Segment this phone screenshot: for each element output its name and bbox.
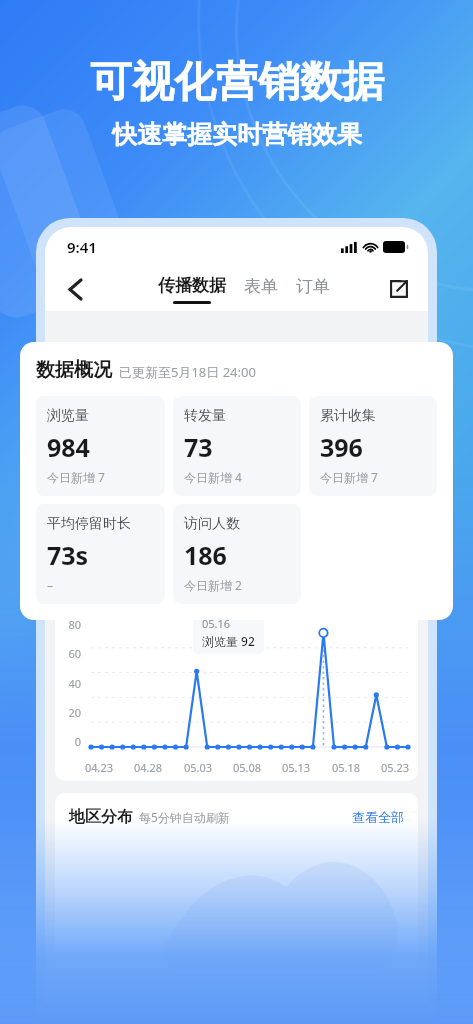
staticText: 转发量 xyxy=(184,407,226,425)
button[interactable]: 表单 xyxy=(244,276,278,304)
button[interactable]: 查看全部 xyxy=(352,809,404,825)
staticText: 地区分布 xyxy=(69,807,133,827)
staticText: 984 xyxy=(47,430,90,464)
staticText: 05.16 xyxy=(202,616,231,631)
staticText: 40 xyxy=(61,676,81,691)
staticText: – xyxy=(47,577,54,593)
button[interactable]: Back xyxy=(57,271,93,307)
staticText: 平均停留时长 xyxy=(47,515,131,533)
staticText: 已更新至5月18日 24:00 xyxy=(119,363,256,381)
staticText: 73s xyxy=(47,538,89,572)
staticText: 浏览量 92 xyxy=(202,633,255,649)
staticText: 73 xyxy=(184,430,213,464)
staticText: 浏览量 xyxy=(47,407,89,425)
staticText: 今日新增 7 xyxy=(320,469,378,485)
staticText: 数据概况 xyxy=(36,358,112,382)
staticText: 396 xyxy=(320,430,363,464)
staticText: 可视化营销数据 xyxy=(90,56,384,109)
staticText: 05.18 xyxy=(332,760,361,775)
staticText: 9:41 xyxy=(67,237,97,257)
staticText: 今日新增 7 xyxy=(47,469,105,485)
staticText: 186 xyxy=(184,538,227,572)
button[interactable]: Share xyxy=(382,272,416,306)
staticText: 0 xyxy=(61,734,81,749)
staticText: 每5分钟自动刷新 xyxy=(139,809,230,825)
staticText: 今日新增 2 xyxy=(184,577,242,593)
button[interactable]: 累计收集 xyxy=(309,396,437,496)
staticText: 快速掌握实时营销效果 xyxy=(112,119,362,150)
staticText: 05.03 xyxy=(184,760,213,775)
button[interactable]: 传播数据 xyxy=(158,275,226,304)
button[interactable]: 浏览量 xyxy=(36,396,165,496)
button[interactable]: 转发量 xyxy=(173,396,301,496)
staticText: 访问人数 xyxy=(184,515,240,533)
staticText: 05.13 xyxy=(282,760,311,775)
button[interactable]: 订单 xyxy=(296,276,330,304)
staticText: 05.08 xyxy=(233,760,262,775)
staticText: 04.28 xyxy=(134,760,163,775)
staticText: 05.23 xyxy=(381,760,410,775)
staticText: 今日新增 4 xyxy=(184,469,242,485)
staticText: 80 xyxy=(61,617,81,632)
staticText: 传播数据 xyxy=(158,275,226,296)
staticText: 累计收集 xyxy=(320,407,376,425)
button[interactable]: 平均停留时长 xyxy=(36,504,165,604)
button[interactable]: 访问人数 xyxy=(173,504,301,604)
staticText: 60 xyxy=(61,646,81,661)
staticText: 04.23 xyxy=(85,760,114,775)
staticText: 20 xyxy=(61,705,81,720)
